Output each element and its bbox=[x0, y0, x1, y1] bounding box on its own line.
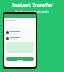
staticText: Recipient bbox=[6, 19, 15, 22]
button[interactable] bbox=[6, 29, 34, 35]
staticText: Send bbox=[17, 58, 23, 61]
staticText: Send money in seconds bbox=[15, 10, 49, 14]
button[interactable]: Send bbox=[6, 57, 34, 61]
button[interactable] bbox=[6, 35, 34, 41]
staticText: Instant Transfer bbox=[12, 2, 53, 9]
